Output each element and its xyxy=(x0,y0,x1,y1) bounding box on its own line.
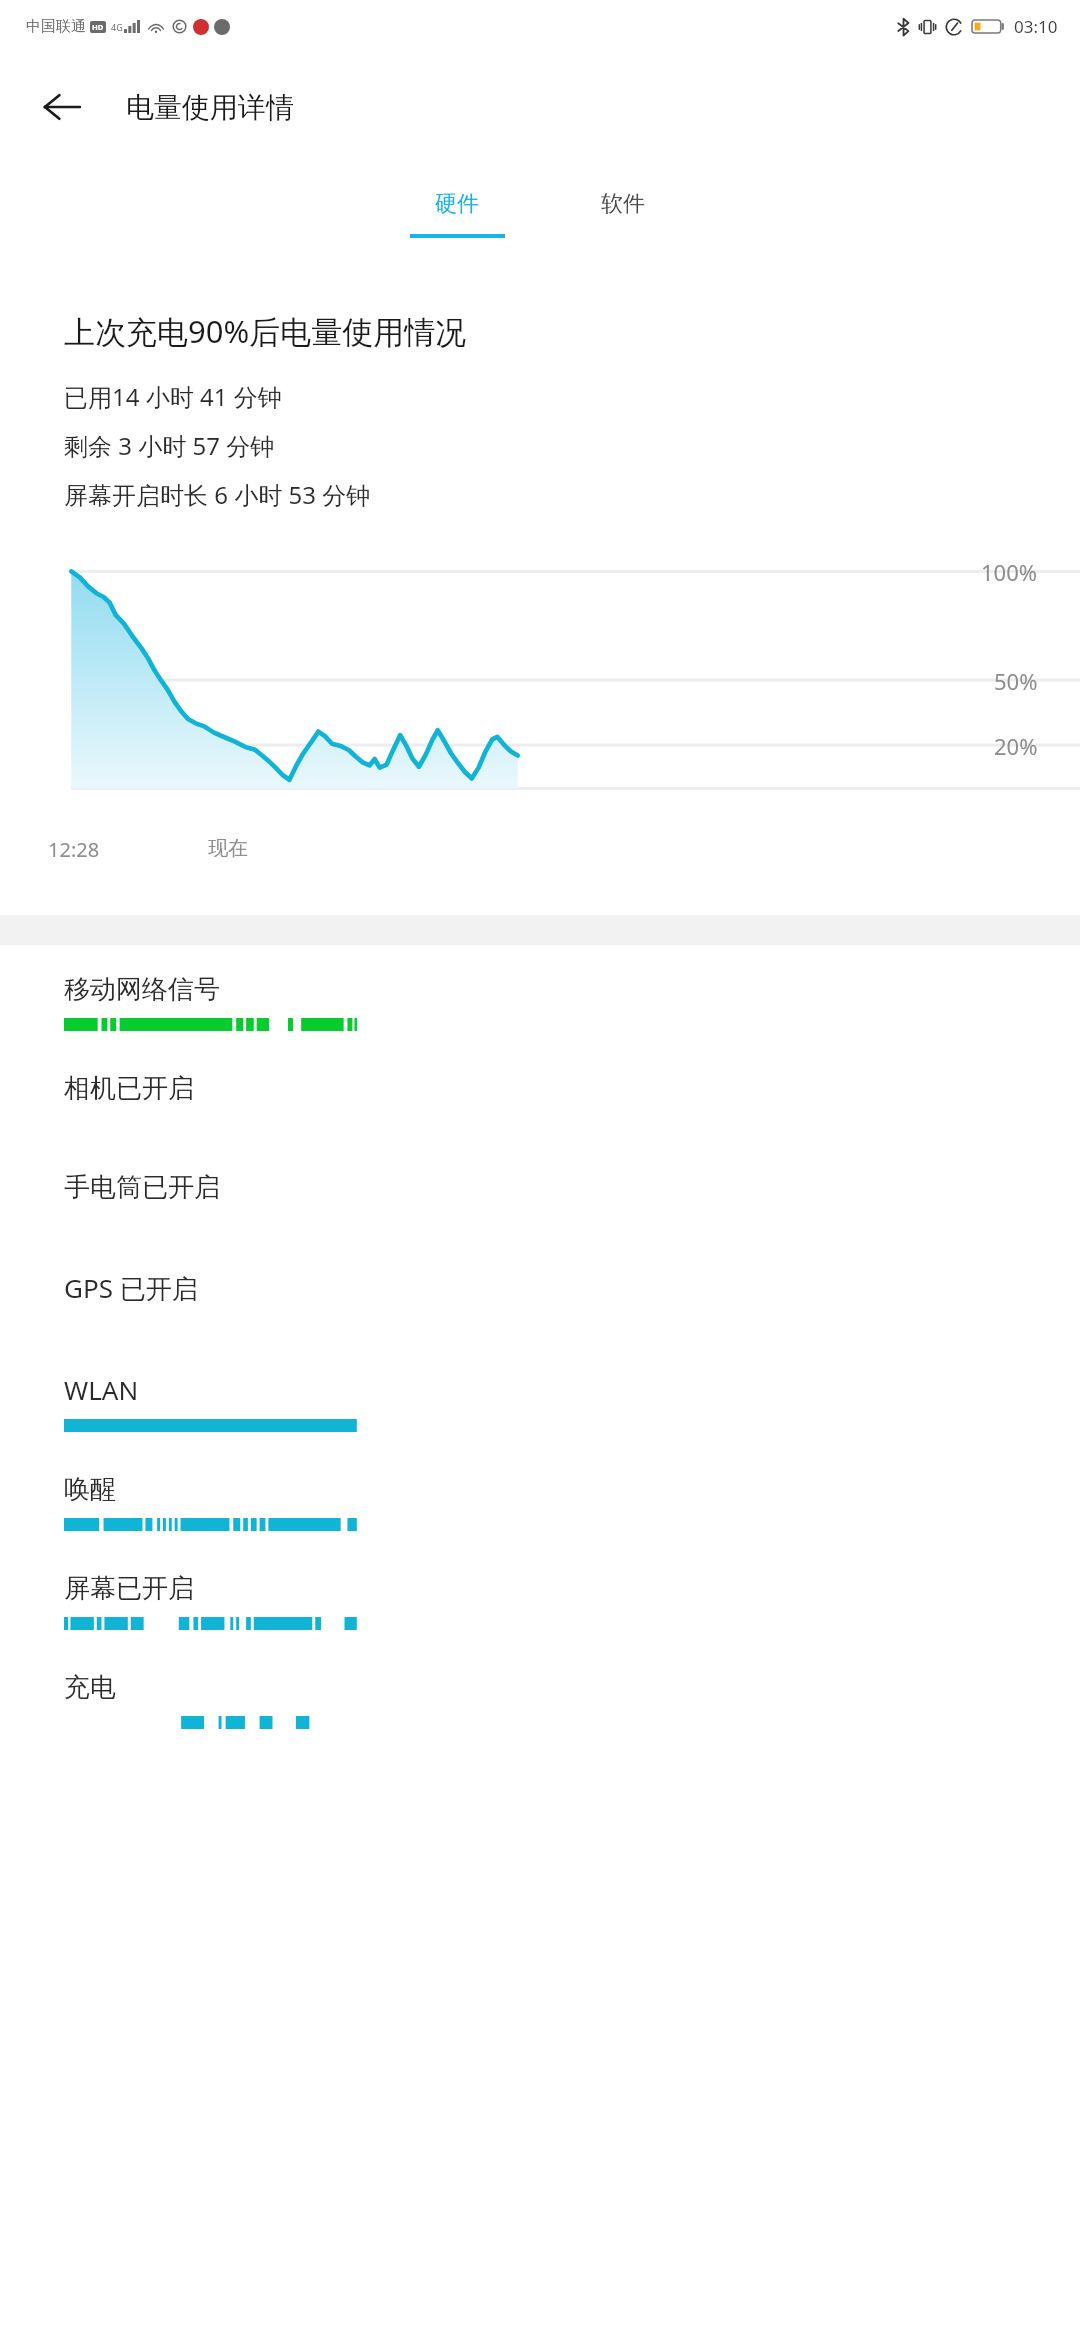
staticText: 唤醒 xyxy=(64,1473,116,1506)
staticText: 已用14 小时 41 分钟 xyxy=(64,380,282,413)
staticText: 手电筒已开启 xyxy=(64,1171,220,1204)
staticText: 硬件 xyxy=(435,190,479,218)
staticText: 上次充电90%后电量使用情况 xyxy=(64,310,467,352)
staticText: 03:10 xyxy=(1014,15,1058,38)
staticText: 50% xyxy=(994,666,1038,696)
staticText: 4G xyxy=(111,21,123,33)
button[interactable]: 手电筒已开启 xyxy=(0,1143,1080,1242)
staticText: 相机已开启 xyxy=(64,1072,194,1105)
staticText: 移动网络信号 xyxy=(64,973,220,1006)
staticText: 剩余 3 小时 57 分钟 xyxy=(64,429,275,462)
button[interactable]: 充电 xyxy=(0,1643,1080,1742)
staticText: 软件 xyxy=(601,190,645,218)
button[interactable]: 屏幕已开启 xyxy=(0,1544,1080,1643)
button[interactable]: GPS 已开启 xyxy=(0,1242,1080,1344)
staticText: 屏幕开启时长 6 小时 53 分钟 xyxy=(64,478,371,511)
button[interactable]: 移动网络信号 xyxy=(0,945,1080,1044)
staticText: 屏幕已开启 xyxy=(64,1572,194,1605)
staticText: HD xyxy=(92,22,104,32)
staticText: 20% xyxy=(994,731,1038,761)
button[interactable]: 相机已开启 xyxy=(0,1044,1080,1143)
button[interactable]: 唤醒 xyxy=(0,1445,1080,1544)
staticText: 中国联通 xyxy=(26,17,86,36)
button[interactable]: 软件 xyxy=(564,190,682,238)
button[interactable]: 硬件 xyxy=(398,190,516,238)
staticText: 充电 xyxy=(64,1671,116,1704)
staticText: 12:28 xyxy=(48,836,100,863)
staticText: GPS 已开启 xyxy=(64,1270,198,1306)
staticText: WLAN xyxy=(64,1372,139,1407)
staticText: 100% xyxy=(981,557,1038,587)
button[interactable]: Back xyxy=(28,73,96,141)
button[interactable]: WLAN xyxy=(0,1344,1080,1445)
staticText: 电量使用详情 xyxy=(126,90,294,125)
staticText: 现在 xyxy=(208,836,248,861)
